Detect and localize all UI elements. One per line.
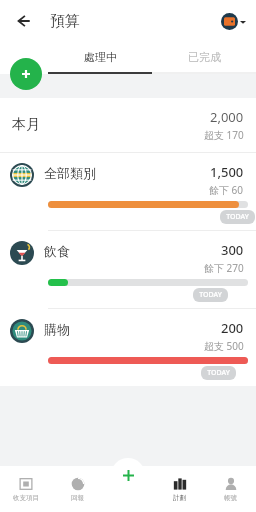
staticText: 計劃	[173, 494, 186, 502]
staticText: 購物	[44, 321, 70, 337]
staticText: TODAY	[199, 290, 222, 300]
staticText: 超支 170	[204, 128, 244, 142]
staticText: 處理中	[84, 50, 117, 64]
staticText: 餘下 60	[209, 183, 244, 197]
button[interactable]: 計劃	[154, 466, 205, 512]
staticText: 已完成	[188, 50, 221, 64]
button[interactable]: 全部類別	[0, 153, 256, 231]
staticText: 200	[221, 319, 244, 337]
button[interactable]: Add budget	[10, 58, 42, 90]
staticText: 本月	[12, 116, 40, 134]
button[interactable]: 購物	[0, 309, 256, 386]
staticText: 1,500	[210, 163, 244, 181]
button[interactable]: Select account	[221, 13, 246, 30]
button[interactable]: 處理中	[48, 42, 152, 72]
button[interactable]: 本月	[0, 98, 256, 152]
staticText: 餘下 270	[204, 261, 244, 275]
staticText: 超支 500	[204, 339, 244, 353]
staticText: TODAY	[207, 368, 230, 378]
staticText: 預算	[50, 12, 80, 31]
staticText: 2,000	[210, 108, 244, 126]
button[interactable]: Back	[8, 6, 38, 36]
button[interactable]: 帳號	[205, 466, 256, 512]
staticText: 帳號	[224, 494, 237, 502]
staticText: 回報	[71, 494, 84, 502]
button[interactable]: Add	[111, 458, 145, 492]
button[interactable]: 飲食	[0, 231, 256, 309]
button[interactable]: 回報	[52, 466, 103, 512]
staticText: 收支項目	[13, 494, 39, 502]
staticText: 全部類別	[44, 165, 96, 181]
staticText: 飲食	[44, 243, 70, 259]
button[interactable]: 收支項目	[0, 466, 52, 512]
staticText: 300	[221, 241, 244, 259]
button[interactable]: 已完成	[152, 42, 256, 72]
staticText: TODAY	[226, 212, 249, 222]
